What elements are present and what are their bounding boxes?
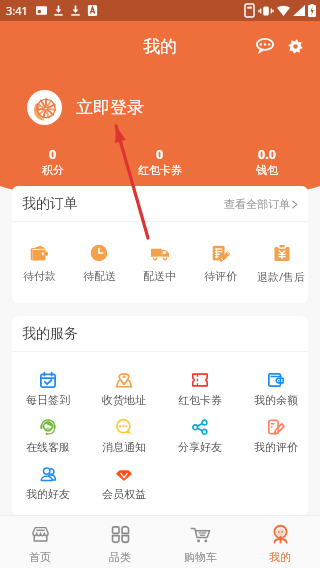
button[interactable]: 立即登录 [0, 71, 320, 144]
staticText: 我的订单 [22, 195, 78, 213]
button[interactable]: 我的评价 [238, 419, 308, 466]
staticText: 查看全部订单 [224, 197, 290, 211]
button[interactable]: 首页 [0, 516, 80, 568]
button[interactable]: 每日签到 [12, 372, 86, 419]
staticText: 品类 [109, 550, 131, 564]
staticText: 消息通知 [102, 440, 146, 454]
button[interactable]: Settings [280, 31, 310, 61]
staticText: 待配送 [83, 269, 116, 283]
staticText: 我的服务 [22, 325, 78, 343]
button[interactable]: 待付款 [12, 222, 69, 303]
staticText: 待评价 [204, 269, 237, 283]
button[interactable]: 购物车 [160, 516, 240, 568]
staticText: 配送中 [143, 269, 176, 283]
staticText: 我的评价 [254, 440, 298, 454]
button[interactable]: 待评价 [190, 222, 251, 303]
staticText: 红包卡券 [138, 163, 182, 177]
button[interactable]: 我的余额 [238, 372, 308, 419]
button[interactable]: 我的好友 [12, 466, 86, 513]
button[interactable]: 红包卡券 [162, 372, 238, 419]
button[interactable]: 0.0 [213, 144, 320, 186]
button[interactable]: 0 [106, 144, 213, 186]
button[interactable]: 品类 [80, 516, 160, 568]
staticText: 我的好友 [26, 487, 70, 501]
staticText: 收货地址 [102, 393, 146, 407]
button[interactable]: 分享好友 [162, 419, 238, 466]
staticText: 积分 [42, 163, 64, 177]
staticText: 立即登录 [76, 97, 144, 118]
button[interactable]: 配送中 [129, 222, 190, 303]
staticText: 每日签到 [26, 393, 70, 407]
staticText: 0 [156, 146, 164, 163]
button[interactable]: 收货地址 [86, 372, 162, 419]
staticText: 我的 [143, 36, 177, 57]
button[interactable]: 我的 [240, 516, 320, 568]
button[interactable]: 退款/售后 [251, 222, 308, 303]
staticText: 我的余额 [254, 393, 298, 407]
button[interactable]: 0 [0, 144, 106, 186]
staticText: 退款/售后 [257, 269, 306, 284]
staticText: 0.0 [258, 146, 276, 163]
staticText: 购物车 [184, 550, 217, 564]
button[interactable]: 待配送 [69, 222, 129, 303]
button[interactable]: 在线客服 [12, 419, 86, 466]
button[interactable]: 会员权益 [86, 466, 162, 513]
button[interactable]: 消息通知 [86, 419, 162, 466]
staticText: 首页 [29, 550, 51, 564]
button[interactable]: Messages [250, 31, 280, 61]
staticText: 待付款 [23, 269, 56, 283]
button[interactable]: 查看全部订单 [224, 197, 298, 211]
staticText: 红包卡券 [178, 393, 222, 407]
staticText: 分享好友 [178, 440, 222, 454]
staticText: 3:41 [6, 3, 28, 18]
staticText: 会员权益 [102, 487, 146, 501]
staticText: 0 [49, 146, 57, 163]
staticText: 我的 [269, 550, 291, 564]
staticText: 钱包 [256, 163, 278, 177]
staticText: 在线客服 [26, 440, 70, 454]
